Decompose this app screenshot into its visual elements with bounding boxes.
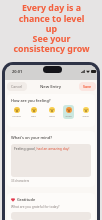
staticText: Great xyxy=(82,114,89,117)
button[interactable]: Cancel xyxy=(7,82,27,91)
staticText: What's on your mind? xyxy=(11,135,53,140)
staticText: Feeling good, had an amazing day! xyxy=(14,146,70,151)
staticText: 33 characters xyxy=(11,179,30,183)
button[interactable]: Bad xyxy=(28,105,39,119)
staticText: What are you grateful for today? xyxy=(11,205,60,209)
staticText: Bad xyxy=(31,114,36,117)
staticText: Terrible xyxy=(12,114,21,117)
staticText: Good xyxy=(65,114,72,117)
button[interactable]: Okay xyxy=(46,105,57,119)
button[interactable]: Great xyxy=(80,105,91,119)
button[interactable]: Good xyxy=(63,105,74,119)
staticText: Every day is a chance to level up See yo… xyxy=(13,2,90,55)
button[interactable]: Feeling good, had an amazing day! xyxy=(11,144,91,177)
staticText: New Entry xyxy=(40,84,62,90)
staticText: 20:01 xyxy=(12,69,23,74)
staticText: Gratitude xyxy=(17,197,36,202)
staticText: How are you feeling? xyxy=(11,98,51,103)
staticText: Cancel xyxy=(11,84,23,89)
staticText: Save xyxy=(83,84,92,89)
button[interactable]: Terrible xyxy=(11,105,22,119)
button[interactable]: Save xyxy=(79,82,96,91)
staticText: Okay xyxy=(49,114,55,117)
